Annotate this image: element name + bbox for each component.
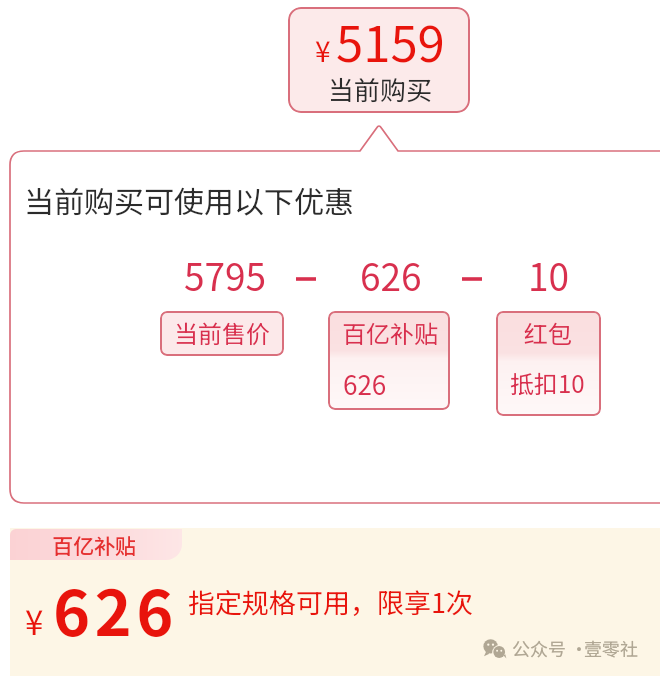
staticText: ¥ — [315, 30, 331, 71]
button[interactable]: 百亿补贴 — [328, 311, 450, 410]
staticText: 百亿补贴 — [342, 315, 438, 350]
staticText: 百亿补贴 — [52, 530, 136, 560]
staticText: 红包 — [524, 315, 572, 350]
staticText: 当前购买 — [328, 70, 433, 108]
button[interactable]: 红包 — [496, 311, 601, 416]
button[interactable] — [10, 528, 660, 676]
staticText: 指定规格可用，限享1次 — [188, 582, 473, 621]
staticText: ¥ — [25, 597, 44, 645]
staticText: 当前购买可使用以下优惠 — [24, 178, 354, 221]
staticText: · — [570, 635, 588, 661]
staticText: 10 — [528, 248, 570, 302]
staticText: 5795 — [184, 248, 267, 302]
staticText: 626 — [343, 365, 387, 403]
staticText: 公众号 — [512, 635, 566, 661]
staticText: 抵扣10 — [510, 365, 585, 400]
button[interactable]: 当前售价 — [160, 311, 284, 356]
staticText: 当前售价 — [174, 315, 270, 350]
staticText: 壹零社 — [584, 635, 638, 661]
other: WeChat official account — [483, 639, 509, 659]
staticText: 626 — [360, 248, 422, 302]
staticText: 5159 — [336, 7, 445, 76]
button[interactable]: ¥ — [288, 7, 470, 113]
staticText: 626 — [53, 563, 178, 654]
